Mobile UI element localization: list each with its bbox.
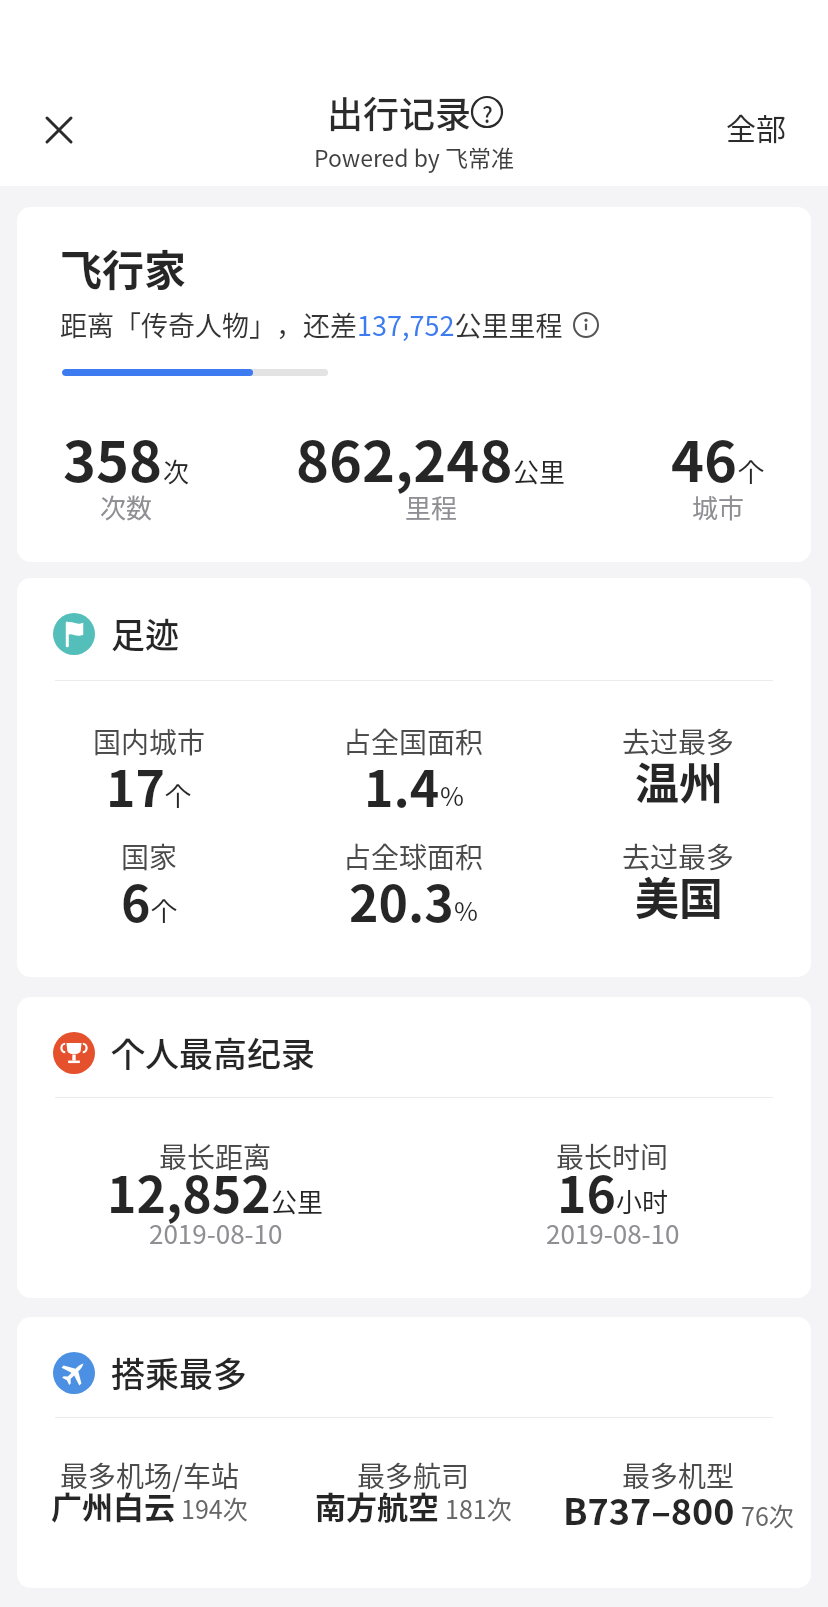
staticText: 占全国面积	[343, 721, 484, 762]
staticText: 12,852	[107, 1155, 271, 1227]
staticText: 1.4	[364, 749, 440, 821]
staticText: 温州	[635, 749, 723, 813]
staticText: 个人最高纪录	[111, 1028, 315, 1077]
staticText: 去过最多	[622, 721, 735, 762]
staticText: 占全球面积	[343, 836, 484, 877]
staticText: 公里	[271, 1182, 324, 1220]
staticText: 最多机场/车站	[60, 1455, 239, 1496]
staticText: 20.3	[349, 864, 454, 936]
staticText: 公里	[513, 452, 566, 490]
staticText: 最长距离	[159, 1136, 272, 1177]
staticText: 16	[557, 1155, 616, 1227]
staticText: 国家	[121, 836, 178, 877]
staticText: 个	[738, 452, 765, 490]
staticText: 足迹	[111, 609, 179, 658]
staticText: 次	[163, 452, 190, 490]
staticText: 国内城市	[93, 721, 206, 762]
staticText: 去过最多	[622, 836, 735, 877]
staticText: 个	[151, 891, 178, 929]
staticText: 出行记录	[327, 86, 472, 138]
staticText: 个	[165, 776, 192, 814]
staticText: 飞行家	[60, 237, 187, 298]
staticText: %	[440, 776, 464, 814]
staticText: 美国	[635, 864, 723, 928]
staticText: 广州白云	[51, 1483, 175, 1528]
staticText: 862,248	[296, 417, 513, 498]
staticText: 6	[121, 864, 151, 936]
staticText: 最长时间	[556, 1136, 669, 1177]
button[interactable]	[35, 106, 83, 154]
staticText: 小时	[616, 1182, 669, 1220]
staticText: %	[454, 891, 478, 929]
staticText: 里程	[405, 488, 458, 526]
staticText: 全部	[726, 105, 786, 148]
staticText: 46	[671, 417, 738, 498]
staticText: 次数	[100, 488, 153, 526]
staticText: B737–800	[563, 1483, 735, 1535]
button[interactable]: 全部	[726, 105, 786, 148]
staticText: 最多航司	[357, 1455, 470, 1496]
staticText: 181次	[445, 1490, 512, 1526]
staticText: Powered by 飞常准	[314, 140, 514, 173]
staticText: ?	[482, 97, 493, 127]
staticText: 2019-08-10	[546, 1214, 680, 1252]
staticText: 358	[63, 417, 163, 498]
staticText: 搭乘最多	[111, 1348, 247, 1397]
staticText: 194次	[181, 1490, 248, 1526]
staticText: 最多机型	[622, 1455, 735, 1496]
staticText: 2019-08-10	[149, 1214, 283, 1252]
staticText: 城市	[692, 488, 745, 526]
staticText: 17	[106, 749, 165, 821]
staticText: 距离「传奇人物」，还差137,752公里里程	[60, 305, 563, 344]
staticText: 76次	[741, 1497, 794, 1533]
staticText: 南方航空	[315, 1483, 439, 1528]
